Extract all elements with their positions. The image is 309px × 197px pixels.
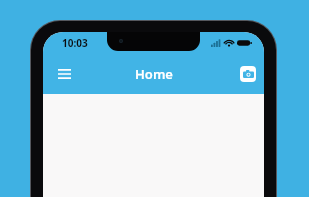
staticText: Home [135,65,173,83]
staticText: 10:03 [62,36,88,50]
button[interactable]: Camera [240,66,256,82]
button[interactable]: Open navigation menu [51,61,77,87]
